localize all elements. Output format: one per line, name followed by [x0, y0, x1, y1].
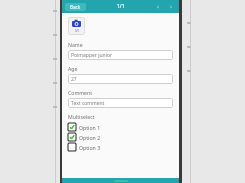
staticText: 1/1	[117, 3, 125, 10]
button[interactable]: Poimapper junior	[68, 50, 173, 60]
staticText: Option 2	[79, 134, 101, 141]
button[interactable]: Option 1	[68, 123, 173, 131]
staticText: Text comment	[71, 100, 105, 107]
staticText: Option 3	[79, 144, 101, 151]
staticText: Comment	[68, 89, 93, 96]
staticText: Name	[68, 41, 83, 48]
button[interactable]: Previous	[153, 2, 163, 12]
button[interactable]: Back	[65, 3, 86, 11]
staticText: 0/5	[75, 29, 79, 33]
button[interactable]: Next	[166, 2, 176, 12]
button[interactable]: Take photo	[68, 17, 85, 35]
staticText: Back	[70, 4, 81, 10]
button[interactable]: Option 3	[68, 143, 173, 151]
staticText: 27	[71, 76, 77, 83]
staticText: Age	[68, 65, 78, 72]
button[interactable]: 27	[68, 74, 173, 84]
staticText: Option 1	[79, 124, 101, 131]
staticText: Poimapper junior	[71, 52, 113, 59]
button[interactable]: Text comment	[68, 98, 173, 108]
button[interactable]: Option 2	[68, 133, 173, 141]
staticText: Multiselect	[68, 113, 95, 120]
